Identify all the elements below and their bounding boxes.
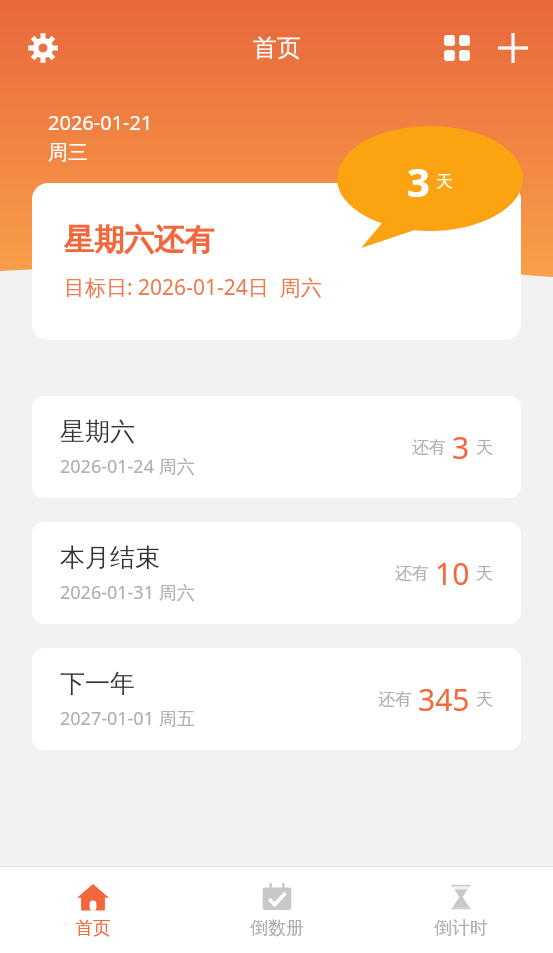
staticText: 首页 <box>253 33 301 63</box>
button[interactable]: 首页 <box>0 867 185 953</box>
button[interactable]: 下一年 <box>32 648 521 750</box>
button[interactable]: Add <box>485 20 541 76</box>
staticText: 目标日: 2026-01-24日 周六 <box>64 273 322 302</box>
staticText: 首页 <box>75 917 111 940</box>
staticText: 周三 <box>48 140 88 165</box>
staticText: 星期六还有 <box>64 221 214 259</box>
staticText: 天 <box>476 689 493 710</box>
staticText: 倒数册 <box>250 917 304 940</box>
staticText: 本月结束 <box>60 542 160 573</box>
staticText: 天 <box>476 437 493 458</box>
button[interactable]: 星期六 <box>32 396 521 498</box>
staticText: 3 <box>407 154 430 208</box>
button[interactable]: Grid view <box>429 20 485 76</box>
button[interactable]: 本月结束 <box>32 522 521 624</box>
staticText: 下一年 <box>60 668 135 699</box>
button[interactable]: 倒计时 <box>369 867 553 953</box>
staticText: 2026-01-31 周六 <box>60 580 195 605</box>
staticText: 345 <box>418 679 470 720</box>
staticText: 10 <box>435 553 470 594</box>
staticText: 天 <box>436 171 453 192</box>
staticText: 还有 <box>412 437 446 458</box>
button[interactable]: 星期六还有 <box>32 183 521 340</box>
staticText: 2026-01-21 <box>48 109 153 136</box>
staticText: 还有 <box>378 689 412 710</box>
staticText: 天 <box>476 563 493 584</box>
staticText: 星期六 <box>60 416 135 447</box>
staticText: 倒计时 <box>434 917 488 940</box>
staticText: 还有 <box>395 563 429 584</box>
staticText: 3 <box>452 427 470 468</box>
staticText: 2026-01-24 周六 <box>60 454 195 479</box>
button[interactable]: 倒数册 <box>185 867 369 953</box>
button[interactable]: Settings <box>14 19 72 77</box>
staticText: 2027-01-01 周五 <box>60 706 195 731</box>
